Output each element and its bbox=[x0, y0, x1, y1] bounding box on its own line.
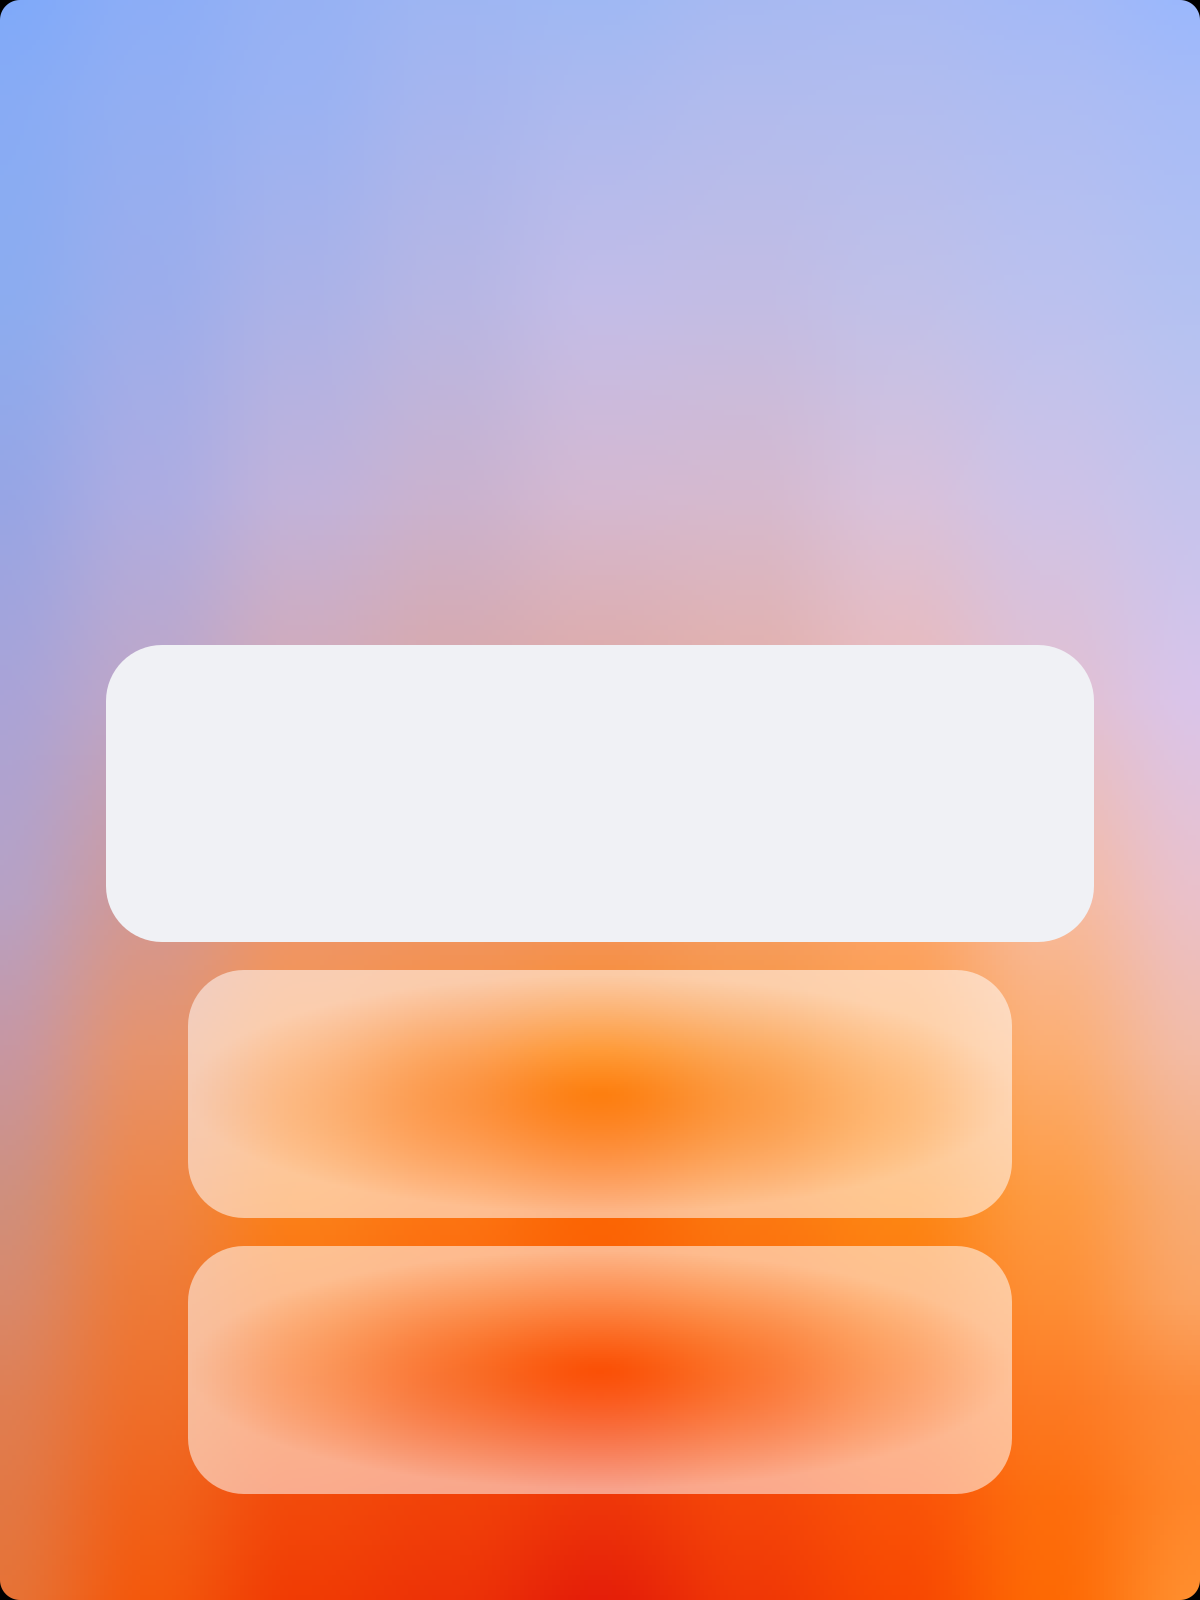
button[interactable]: Second option bbox=[188, 1246, 1012, 1494]
button[interactable]: Content card bbox=[106, 645, 1094, 942]
button[interactable]: First option bbox=[188, 970, 1012, 1218]
